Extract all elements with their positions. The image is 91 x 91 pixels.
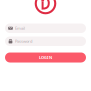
staticText: LOGIN <box>39 55 52 60</box>
button[interactable]: Password <box>5 36 86 46</box>
button[interactable]: Email <box>5 23 86 33</box>
button[interactable]: LOGIN <box>5 52 86 62</box>
staticText: Password <box>15 39 32 44</box>
staticText: Email <box>15 26 25 31</box>
